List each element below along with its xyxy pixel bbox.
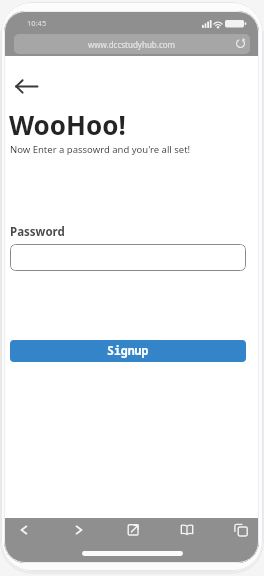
button[interactable] <box>15 78 39 95</box>
button[interactable]: www.dccstudyhub.com <box>14 34 250 54</box>
staticText: Now Enter a passowrd and you're all set! <box>10 143 191 156</box>
button[interactable] <box>10 244 246 271</box>
staticText: WooHoo! <box>9 107 126 142</box>
staticText: www.dccstudyhub.com <box>88 39 176 50</box>
staticText: Signup <box>107 343 149 359</box>
button[interactable] <box>16 522 32 538</box>
staticText: Password <box>10 224 65 240</box>
button[interactable] <box>233 522 249 538</box>
button[interactable] <box>179 522 195 538</box>
button[interactable] <box>71 522 87 538</box>
button[interactable] <box>125 522 141 538</box>
button[interactable]: Signup <box>10 340 246 362</box>
staticText: 10:45 <box>27 18 47 28</box>
